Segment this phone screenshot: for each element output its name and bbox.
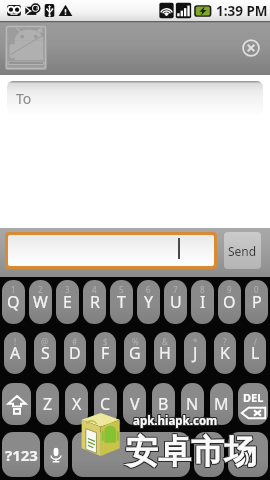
button[interactable] <box>8 235 214 266</box>
button[interactable]: 1 <box>2 280 25 324</box>
button[interactable]: ? <box>214 332 236 374</box>
staticText: D <box>69 342 81 364</box>
button[interactable]: 4 <box>83 280 106 324</box>
staticText: & <box>162 336 168 347</box>
staticText: Z <box>43 393 53 415</box>
staticText: ) <box>245 447 251 467</box>
button[interactable]: . <box>194 432 224 477</box>
staticText: L <box>251 342 260 364</box>
staticText: X <box>72 393 82 415</box>
staticText: R <box>90 291 100 313</box>
staticText: J <box>193 342 198 364</box>
staticText: 2 <box>38 284 43 295</box>
staticText: apk.hiapk.com <box>134 414 219 430</box>
staticText: apk.hiapk.com <box>134 413 219 429</box>
button[interactable]: Enter <box>228 432 268 477</box>
staticText: F <box>101 342 110 364</box>
staticText: M <box>214 393 229 415</box>
staticText: . <box>207 445 212 465</box>
staticText: Y <box>144 291 154 313</box>
staticText: apk.hiapk.com <box>133 413 218 429</box>
staticText: apk.hiapk.com <box>133 412 218 428</box>
staticText: C <box>100 393 111 415</box>
button[interactable]: Space <box>72 432 190 477</box>
staticText: 9 <box>227 284 232 295</box>
button[interactable]: B <box>152 383 175 425</box>
staticText: ) <box>243 446 249 466</box>
button[interactable]: 9 <box>218 280 241 324</box>
staticText: 安卓市场 <box>124 431 256 473</box>
button[interactable]: ! <box>4 332 26 374</box>
staticText: H <box>159 342 171 364</box>
staticText: W <box>33 291 48 313</box>
button[interactable]: Z <box>36 383 59 425</box>
button[interactable]: X <box>65 383 88 425</box>
staticText: K <box>220 342 230 364</box>
staticText: ) <box>245 446 251 466</box>
button[interactable]: To <box>7 81 263 115</box>
staticText: @ <box>41 336 49 347</box>
button[interactable]: Shift <box>2 383 31 425</box>
staticText: E <box>63 291 72 313</box>
button[interactable]: 5 <box>110 280 133 324</box>
staticText: U <box>170 291 182 313</box>
staticText: $ <box>103 336 108 347</box>
staticText: ) <box>244 447 250 467</box>
staticText: ) <box>243 447 249 467</box>
button[interactable]: ?123 <box>2 432 40 477</box>
staticText: A <box>10 342 21 364</box>
button[interactable]: 2 <box>29 280 52 324</box>
button[interactable]: C <box>94 383 117 425</box>
staticText: apk.hiapk.com <box>132 414 217 430</box>
staticText: apk.hiapk.com <box>132 412 217 428</box>
button[interactable]: # <box>64 332 86 374</box>
staticText: ! <box>14 336 17 347</box>
staticText: 6 <box>146 284 151 295</box>
staticText: Q <box>7 291 20 313</box>
staticText: DEL <box>243 390 264 405</box>
button[interactable]: Remove recipient <box>239 36 263 60</box>
staticText: O <box>223 291 236 313</box>
button[interactable]: 7 <box>164 280 187 324</box>
button[interactable]: 3 <box>56 280 79 324</box>
staticText: 安卓市场 <box>124 430 256 472</box>
staticText: 5 <box>119 284 124 295</box>
button[interactable]: 8 <box>191 280 214 324</box>
button[interactable]: * <box>184 332 206 374</box>
button[interactable]: 0 <box>245 280 268 324</box>
button[interactable]: Voice input <box>44 432 68 477</box>
staticText: 1 <box>11 284 16 295</box>
staticText: I <box>200 291 206 313</box>
staticText: apk.hiapk.com <box>133 414 218 430</box>
button[interactable]: % <box>124 332 146 374</box>
button[interactable]: M <box>210 383 233 425</box>
staticText: G <box>129 342 141 364</box>
staticText: 0 <box>254 284 259 295</box>
button[interactable]: Delete <box>238 383 268 425</box>
staticText: 3 <box>65 284 70 295</box>
staticText: S <box>41 342 50 364</box>
button[interactable]: $ <box>94 332 116 374</box>
staticText: 1:39 PM <box>216 2 268 20</box>
button[interactable]: Send <box>224 232 261 269</box>
button[interactable]: Contact photo <box>5 25 47 70</box>
button[interactable]: & <box>154 332 176 374</box>
button[interactable]: / <box>244 332 266 374</box>
staticText: ? <box>223 336 227 347</box>
button[interactable]: @ <box>34 332 56 374</box>
button[interactable]: N <box>181 383 204 425</box>
staticText: 安卓市场 <box>125 432 257 474</box>
staticText: Send <box>228 243 257 259</box>
staticText: B <box>158 393 169 415</box>
staticText: ?123 <box>5 445 38 465</box>
staticText: 7 <box>173 284 178 295</box>
staticText: apk.hiapk.com <box>134 412 219 428</box>
button[interactable]: 6 <box>137 280 160 324</box>
staticText: V <box>130 393 140 415</box>
staticText: 8 <box>200 284 205 295</box>
staticText: 安卓市场 <box>124 432 256 474</box>
staticText: 4 <box>92 284 97 295</box>
staticText: * <box>193 336 198 347</box>
staticText: 安卓市场 <box>125 431 257 473</box>
button[interactable]: V <box>123 383 146 425</box>
